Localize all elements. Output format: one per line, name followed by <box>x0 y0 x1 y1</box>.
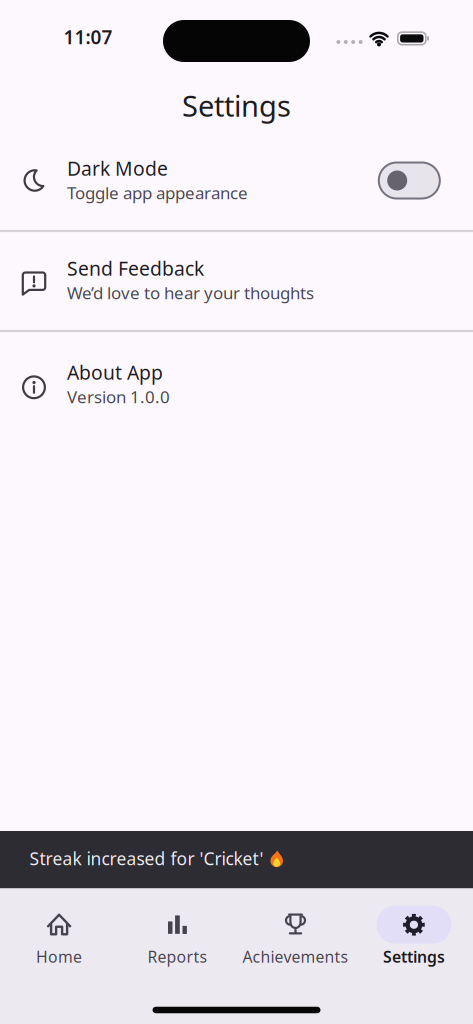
staticText: Settings <box>182 86 291 125</box>
button[interactable]: Reports <box>118 906 236 966</box>
staticText: Toggle app appearance <box>67 181 248 204</box>
button[interactable]: About App <box>0 335 473 435</box>
staticText: Streak increased for 'Cricket' <box>29 847 263 870</box>
button[interactable]: Settings <box>355 906 473 966</box>
staticText: About App <box>67 359 163 385</box>
staticText: We’d love to hear your thoughts <box>67 281 314 304</box>
button[interactable]: Dark Mode <box>379 162 440 198</box>
staticText: Send Feedback <box>67 255 204 281</box>
staticText: Home <box>36 946 82 967</box>
staticText: 11:07 <box>63 24 112 50</box>
button[interactable]: Send Feedback <box>0 231 473 331</box>
staticText: Achievements <box>243 946 349 967</box>
staticText: Settings <box>383 946 445 967</box>
button[interactable]: Achievements <box>237 906 355 966</box>
staticText: Version 1.0.0 <box>67 385 170 408</box>
staticText: Reports <box>147 946 207 967</box>
button[interactable]: Home <box>0 906 118 966</box>
staticText: Dark Mode <box>67 155 168 181</box>
